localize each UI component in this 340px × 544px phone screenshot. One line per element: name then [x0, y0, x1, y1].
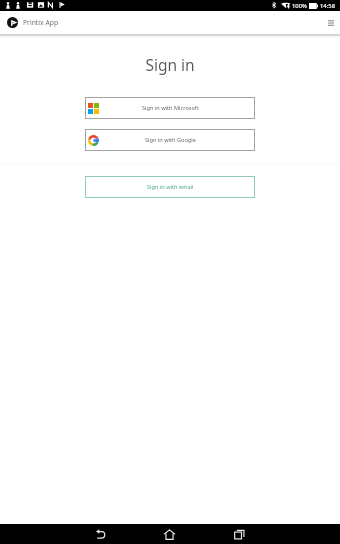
- staticText: Sign in: [0, 54, 340, 75]
- staticText: Printix App: [23, 18, 59, 27]
- button[interactable]: Recents: [229, 524, 249, 544]
- button[interactable]: Menu: [324, 16, 338, 30]
- button[interactable]: Home: [159, 524, 179, 544]
- staticText: 100%: [292, 2, 308, 10]
- button[interactable]: Sign in with email: [85, 176, 255, 198]
- button[interactable]: Sign in with Google: [85, 129, 255, 151]
- staticText: Sign in with Microsoft: [142, 104, 199, 112]
- button[interactable]: Back: [91, 524, 111, 544]
- staticText: 14:58: [320, 2, 336, 10]
- button[interactable]: Sign in with Microsoft: [85, 97, 255, 119]
- staticText: Sign in with email: [147, 183, 194, 191]
- staticText: Sign in with Google: [145, 136, 196, 144]
